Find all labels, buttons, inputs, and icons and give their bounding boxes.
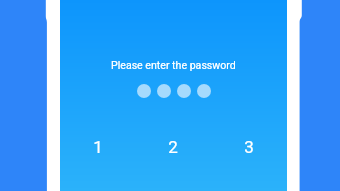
button[interactable]: 3 bbox=[211, 128, 287, 166]
staticText: Please enter the password bbox=[111, 59, 236, 71]
button[interactable]: 2 bbox=[135, 128, 211, 166]
staticText: 3 bbox=[244, 137, 254, 157]
other: Password, 4 digits entered bbox=[137, 84, 211, 98]
staticText: 2 bbox=[168, 137, 178, 157]
staticText: 1 bbox=[93, 137, 103, 157]
button[interactable]: 1 bbox=[60, 128, 135, 166]
